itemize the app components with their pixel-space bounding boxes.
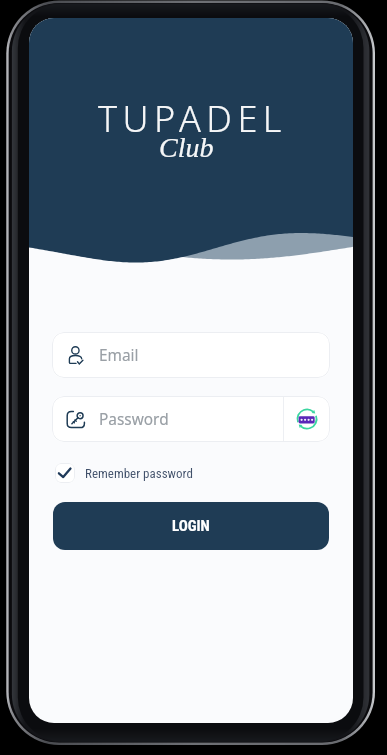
button[interactable]: Password bbox=[52, 396, 330, 442]
button[interactable]: Password manager bbox=[284, 396, 330, 442]
button[interactable]: LOGIN bbox=[53, 502, 329, 550]
staticText: Remember password bbox=[85, 466, 193, 481]
staticText: LOGIN bbox=[172, 517, 210, 535]
button[interactable]: Remember password checkbox bbox=[55, 463, 75, 483]
staticText: Club bbox=[159, 132, 214, 163]
button[interactable]: Email bbox=[52, 332, 330, 378]
staticText: TUPADEL bbox=[98, 94, 287, 143]
staticText: Password bbox=[99, 409, 169, 430]
staticText: Email bbox=[99, 345, 139, 366]
